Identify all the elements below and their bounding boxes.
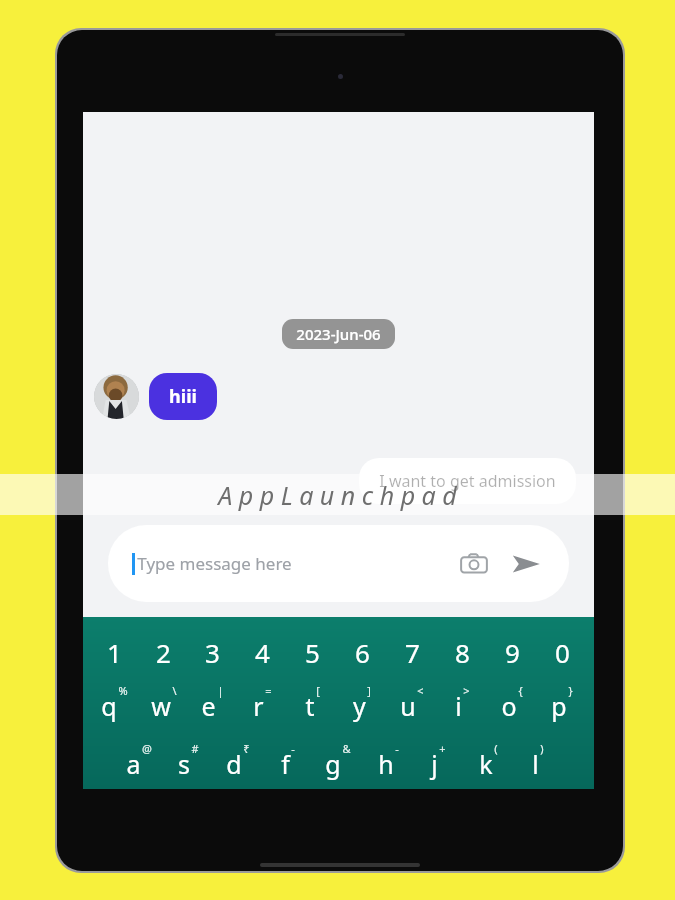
staticText: 8 (455, 635, 470, 665)
button[interactable]: 9 (487, 635, 537, 665)
staticText: 4 (255, 635, 270, 665)
button[interactable]: h (363, 745, 413, 783)
button[interactable]: 7 (387, 635, 437, 665)
staticText: u (400, 689, 416, 723)
button[interactable]: s (163, 745, 213, 783)
staticText: h (378, 747, 394, 781)
staticText: ₹ (243, 741, 250, 756)
staticText: o (501, 689, 517, 723)
button[interactable]: o (487, 687, 537, 725)
staticText: hiii (169, 384, 197, 409)
staticText: = (265, 683, 272, 698)
button[interactable]: 4 (237, 635, 287, 665)
staticText: } (568, 683, 573, 698)
button[interactable]: y (337, 687, 387, 725)
button[interactable]: f (263, 745, 313, 783)
staticText: i (455, 689, 462, 723)
staticText: a (126, 747, 141, 781)
button[interactable]: q (90, 687, 139, 725)
staticText: q (101, 689, 117, 723)
button[interactable]: u (387, 687, 437, 725)
button[interactable]: e (188, 687, 237, 725)
button[interactable]: 2023-Jun-06 (282, 319, 395, 349)
staticText: 1 (107, 635, 122, 665)
staticText: ) (540, 741, 544, 756)
staticText: 3 (205, 635, 220, 665)
button[interactable]: d (213, 745, 263, 783)
button[interactable]: 5 (287, 635, 337, 665)
staticText: 6 (355, 635, 370, 665)
staticText: A p p L a u n c h p a d (218, 478, 457, 512)
button[interactable]: i (437, 687, 487, 725)
staticText: s (178, 747, 190, 781)
button[interactable]: hiii (149, 373, 217, 420)
staticText: f (281, 747, 290, 781)
staticText: { (518, 683, 523, 698)
button[interactable]: j (413, 745, 463, 783)
button[interactable]: l (513, 745, 563, 783)
staticText: r (253, 689, 264, 723)
staticText: [ (316, 683, 320, 698)
staticText: % (118, 683, 128, 698)
staticText: - (291, 741, 295, 756)
button[interactable]: Camera (455, 545, 493, 583)
button[interactable]: 1 (90, 635, 139, 665)
staticText: 2023-Jun-06 (296, 324, 381, 344)
button[interactable]: a (114, 745, 163, 783)
button[interactable]: 0 (537, 635, 587, 665)
staticText: l (532, 747, 539, 781)
button[interactable]: w (139, 687, 188, 725)
staticText: j (431, 747, 438, 781)
staticText: > (463, 683, 470, 698)
staticText: | (217, 683, 224, 698)
staticText: w (151, 689, 171, 723)
staticText: \ (172, 683, 177, 698)
button[interactable]: t (287, 687, 337, 725)
button[interactable]: Send (507, 545, 545, 583)
staticText: t (305, 689, 315, 723)
staticText: 0 (555, 635, 570, 665)
staticText: d (226, 747, 242, 781)
staticText: g (325, 747, 341, 781)
staticText: e (201, 689, 216, 723)
button[interactable]: g (313, 745, 363, 783)
staticText: ( (494, 741, 498, 756)
button[interactable]: 6 (337, 635, 387, 665)
staticText: 7 (405, 635, 420, 665)
button[interactable]: 8 (437, 635, 487, 665)
staticText: - (395, 741, 399, 756)
staticText: 2 (156, 635, 171, 665)
button[interactable]: k (463, 745, 513, 783)
button[interactable]: Type message here (108, 525, 569, 602)
staticText: # (191, 741, 199, 756)
button[interactable]: Contact avatar (94, 374, 139, 419)
staticText: & (342, 741, 351, 756)
button[interactable]: p (537, 687, 587, 725)
staticText: < (417, 683, 424, 698)
button[interactable]: 2 (139, 635, 188, 665)
staticText: ] (367, 683, 371, 698)
staticText: I want to get admission (379, 470, 556, 492)
staticText: y (353, 689, 366, 723)
button[interactable]: I want to get admission (359, 458, 576, 504)
staticText: Type message here (137, 552, 292, 575)
staticText: p (551, 689, 567, 723)
staticText: @ (142, 741, 152, 756)
staticText: 9 (505, 635, 520, 665)
staticText: k (479, 747, 493, 781)
staticText: + (439, 741, 446, 756)
button[interactable]: r (237, 687, 287, 725)
staticText: 5 (305, 635, 320, 665)
button[interactable]: 3 (188, 635, 237, 665)
